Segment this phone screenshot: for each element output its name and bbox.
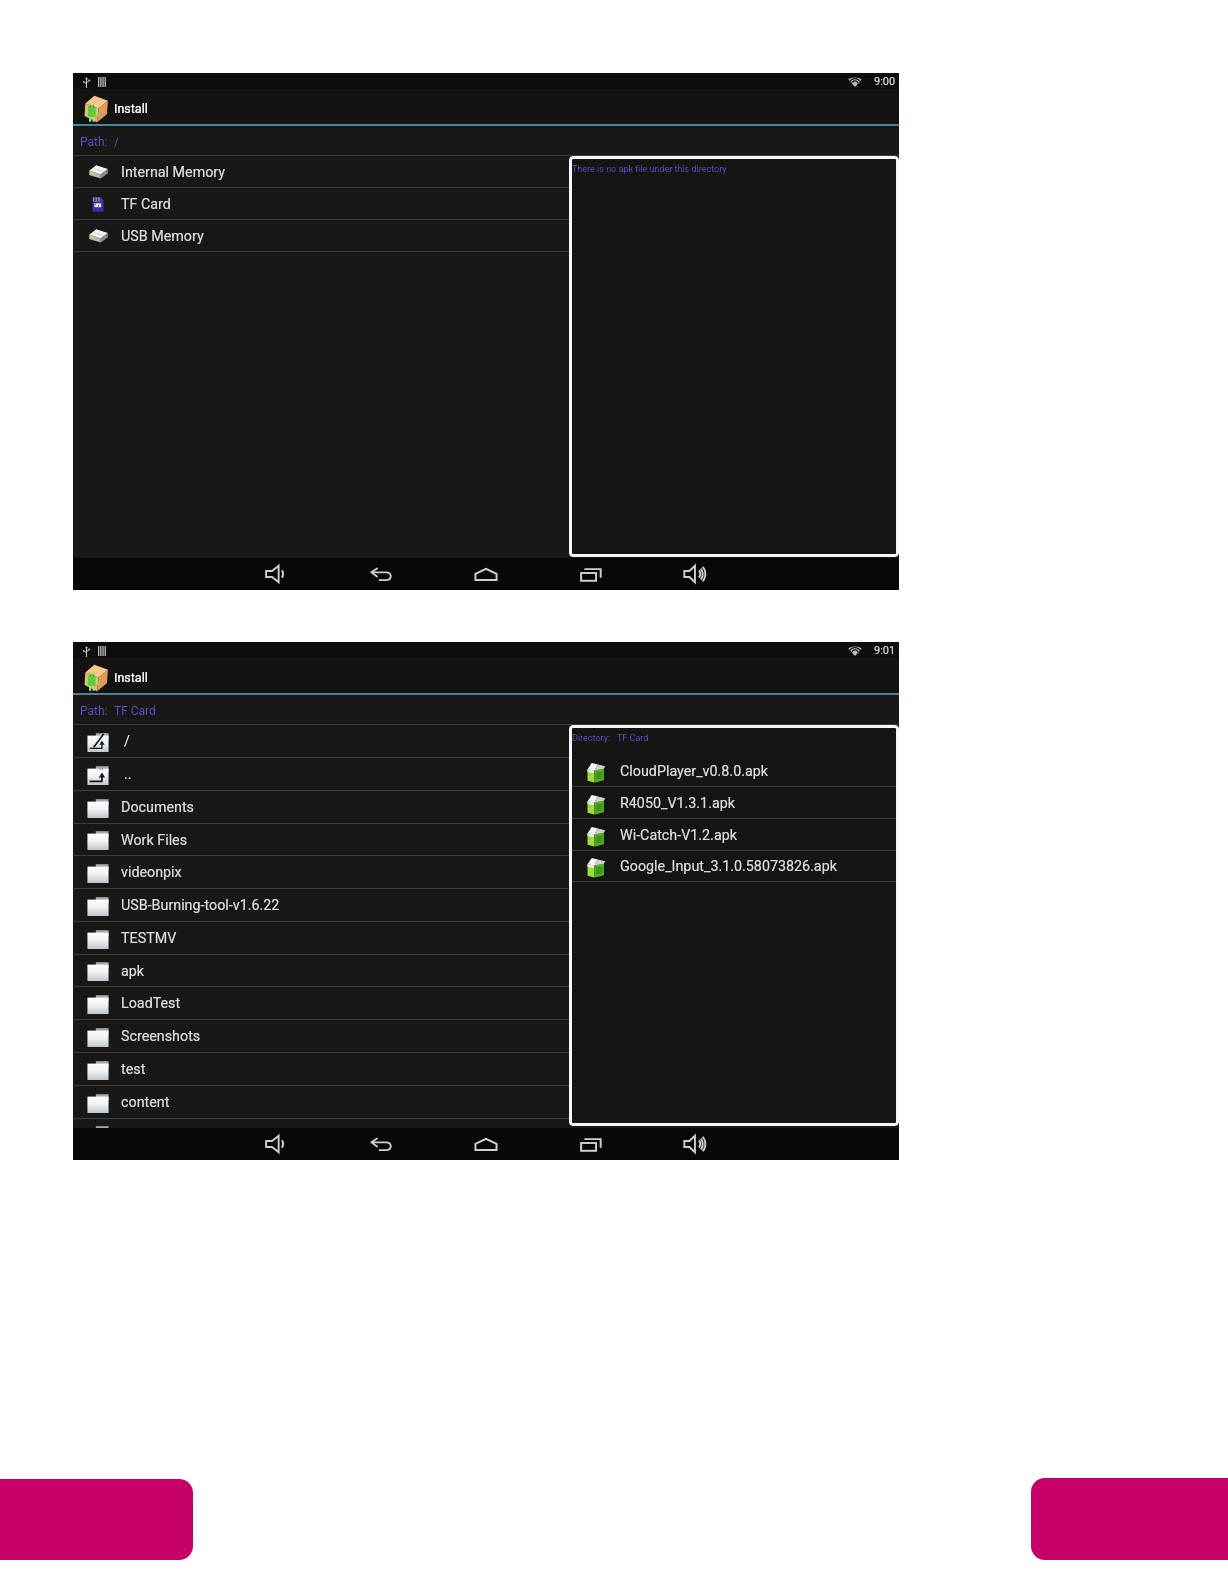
button[interactable]: Home <box>472 1128 500 1160</box>
button[interactable]: USB-Burning-tool-v1.6.22 <box>73 889 899 922</box>
button[interactable]: CloudPlayer_v0.8.0.apk <box>569 755 899 787</box>
button[interactable]: Volume up <box>682 558 710 590</box>
staticText: 9:01 <box>874 644 896 657</box>
staticText: TF Card <box>617 733 649 744</box>
staticText: TF Card <box>114 704 156 718</box>
staticText: R4050_V1.3.1.apk <box>620 795 735 812</box>
button[interactable]: USB Memory <box>73 220 899 252</box>
staticText: .. <box>124 766 132 783</box>
staticText: Screenshots <box>121 1028 201 1045</box>
button[interactable]: videonpix <box>73 856 899 889</box>
button[interactable]: content <box>73 1086 899 1119</box>
button[interactable]: Work Files <box>73 824 899 856</box>
staticText: USB-Burning-tool-v1.6.22 <box>121 897 280 914</box>
staticText: Install <box>114 670 148 685</box>
button[interactable]: Internal Memory <box>73 156 899 188</box>
button[interactable]: Volume down <box>262 1128 290 1160</box>
staticText: / <box>124 733 130 750</box>
button[interactable]: / <box>73 725 899 758</box>
button[interactable] <box>73 1119 899 1151</box>
staticText: There is no apk file under this director… <box>572 164 727 175</box>
button[interactable]: Documents <box>73 791 899 824</box>
staticText: TESTMV <box>121 930 177 947</box>
staticText: USB Memory <box>121 228 204 245</box>
button[interactable]: Wi-Catch-V1.2.apk <box>569 819 899 851</box>
button[interactable]: LoadTest <box>73 987 899 1020</box>
staticText: apk <box>121 963 145 980</box>
staticText: test <box>121 1061 146 1078</box>
button[interactable]: TESTMV <box>73 922 899 955</box>
button[interactable]: TF Card <box>73 188 899 220</box>
button[interactable]: Volume down <box>262 558 290 590</box>
staticText: Internal Memory <box>121 164 226 181</box>
button[interactable]: Home <box>472 558 500 590</box>
staticText: LoadTest <box>121 995 181 1012</box>
staticText: videonpix <box>121 864 182 881</box>
staticText: Work Files <box>121 832 188 849</box>
button[interactable]: Recent apps <box>577 558 605 590</box>
button[interactable]: Recent apps <box>577 1128 605 1160</box>
staticText: Directory: <box>572 733 611 744</box>
staticText: Google_Input_3.1.0.58073826.apk <box>620 858 837 875</box>
button[interactable]: Back <box>367 1128 395 1160</box>
button[interactable]: apk <box>73 955 899 987</box>
staticText: Path: <box>80 704 108 718</box>
staticText: Path: <box>80 135 108 149</box>
button[interactable]: Google_Input_3.1.0.58073826.apk <box>569 851 899 882</box>
staticText: / <box>114 135 119 149</box>
button[interactable]: Screenshots <box>73 1020 899 1053</box>
button[interactable]: .. <box>73 758 899 791</box>
button[interactable]: Back <box>367 558 395 590</box>
staticText: content <box>121 1094 170 1111</box>
staticText: Documents <box>121 799 194 816</box>
staticText: 9:00 <box>874 75 896 88</box>
staticText: Wi-Catch-V1.2.apk <box>620 827 737 844</box>
staticText: TF Card <box>121 196 171 213</box>
staticText: CloudPlayer_v0.8.0.apk <box>620 763 768 780</box>
button[interactable]: test <box>73 1053 899 1086</box>
staticText: Install <box>114 101 148 116</box>
button[interactable]: Volume up <box>682 1128 710 1160</box>
button[interactable]: R4050_V1.3.1.apk <box>569 787 899 819</box>
